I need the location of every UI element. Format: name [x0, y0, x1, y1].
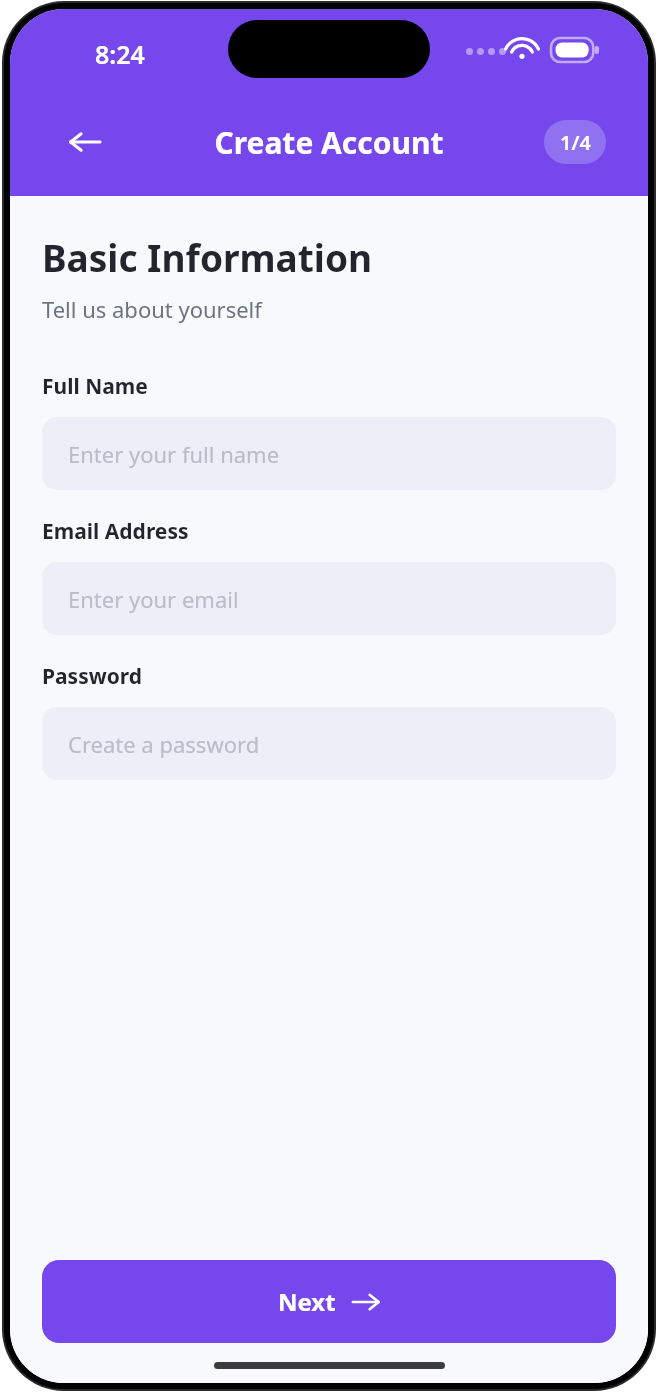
button[interactable]: Back	[58, 115, 112, 169]
staticText: Next	[278, 1285, 336, 1318]
staticText: Email Address	[42, 517, 189, 546]
button[interactable]: Enter your email	[42, 562, 616, 635]
staticText: Basic Information	[42, 232, 373, 282]
button[interactable]: Create a password	[42, 707, 616, 780]
button[interactable]: Enter your full name	[42, 417, 616, 490]
staticText: Full Name	[42, 372, 148, 401]
staticText: Create a password	[68, 729, 260, 759]
staticText: 1/4	[560, 129, 591, 156]
staticText: Create Account	[214, 122, 444, 163]
staticText: Password	[42, 662, 143, 691]
staticText: 8:24	[95, 37, 145, 71]
button[interactable]: Next	[42, 1260, 616, 1343]
staticText: Enter your email	[68, 584, 239, 614]
staticText: Enter your full name	[68, 439, 280, 469]
staticText: Tell us about yourself	[42, 294, 262, 324]
button[interactable]: 1/4	[544, 120, 606, 164]
